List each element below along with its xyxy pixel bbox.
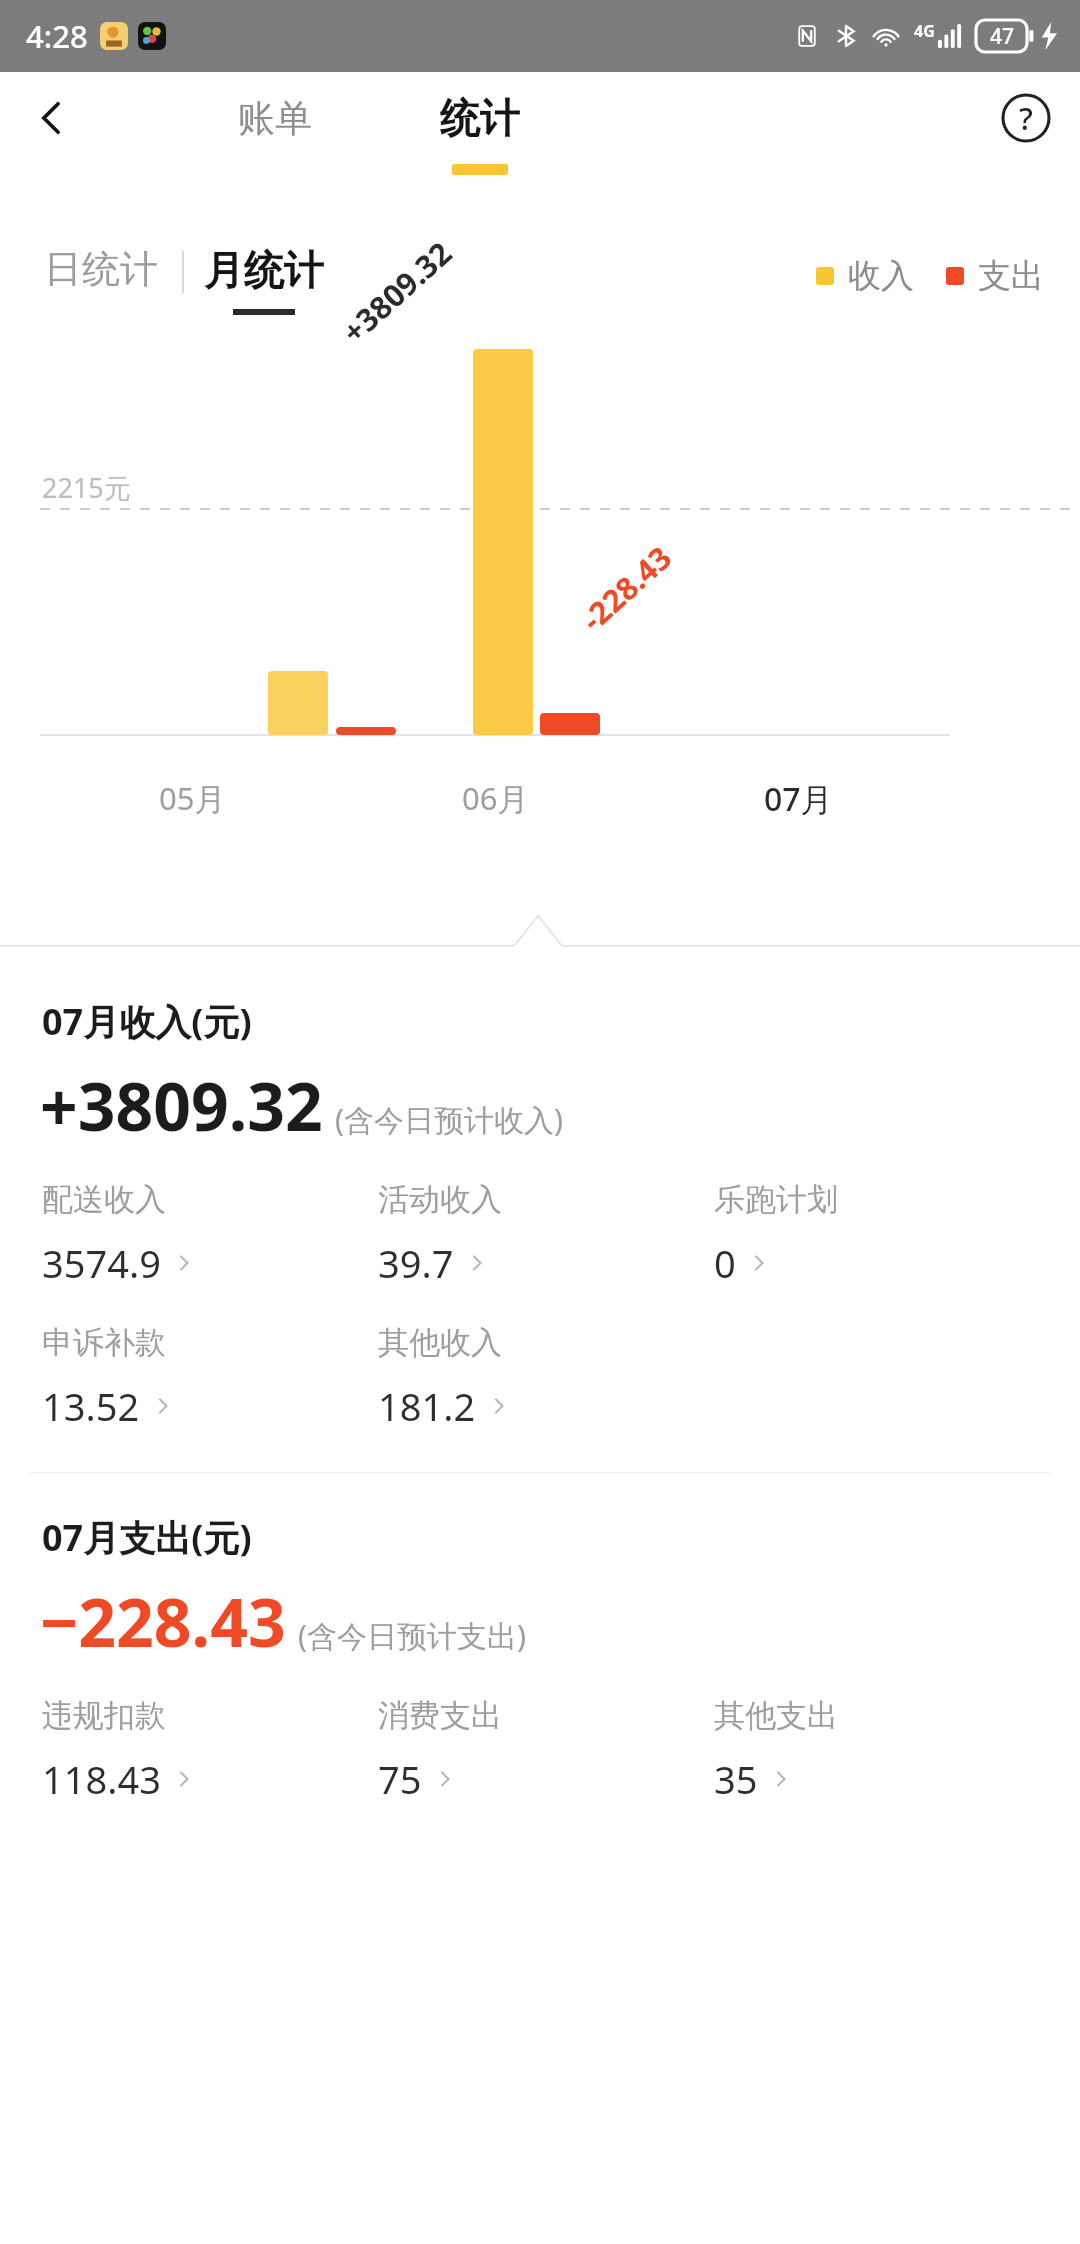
staticText: 13.52	[42, 1380, 140, 1432]
button[interactable]: 帮助	[988, 80, 1064, 156]
staticText: -228.43	[572, 536, 680, 640]
staticText: 支出	[978, 255, 1044, 297]
staticText: 47	[990, 22, 1015, 51]
staticText: 75	[378, 1753, 422, 1805]
staticText: +3809.32	[40, 1060, 323, 1150]
button[interactable]: 活动收入	[378, 1180, 502, 1289]
staticText: −228.43	[40, 1576, 286, 1666]
staticText: 07月	[764, 777, 833, 821]
staticText: 3574.9	[42, 1237, 161, 1289]
staticText: 月统计	[204, 245, 324, 295]
button[interactable]: 配送收入	[42, 1180, 195, 1289]
staticText: (含今日预计收入)	[335, 1099, 563, 1140]
staticText: 其他收入	[378, 1323, 502, 1362]
staticText: 07月收入(元)	[42, 997, 252, 1046]
staticText: 账单	[238, 95, 312, 142]
staticText: 申诉补款	[42, 1323, 166, 1362]
staticText: 违规扣款	[42, 1696, 166, 1735]
staticText: 活动收入	[378, 1180, 502, 1219]
button[interactable]: 日统计	[40, 245, 162, 293]
staticText: 收入	[848, 255, 914, 297]
staticText: 乐跑计划	[714, 1180, 838, 1219]
staticText: 05月	[159, 777, 226, 819]
staticText: ?	[1019, 97, 1033, 139]
staticText: 4:28	[26, 15, 88, 57]
button[interactable]: 消费支出	[378, 1696, 502, 1805]
staticText: 消费支出	[378, 1696, 502, 1735]
staticText: 181.2	[378, 1380, 476, 1432]
button[interactable]: 乐跑计划	[714, 1180, 838, 1289]
staticText: (含今日预计支出)	[298, 1615, 526, 1656]
staticText: 0	[714, 1237, 736, 1289]
staticText: 07月支出(元)	[42, 1513, 252, 1562]
staticText: 日统计	[44, 245, 158, 293]
button[interactable]: 月统计	[204, 245, 324, 315]
button[interactable]: 返回	[14, 80, 90, 156]
staticText: 118.43	[42, 1753, 161, 1805]
staticText: 35	[714, 1753, 758, 1805]
button[interactable]: 其他收入	[378, 1323, 510, 1432]
staticText: 39.7	[378, 1237, 454, 1289]
staticText: 4G	[914, 20, 935, 42]
staticText: 2215元	[42, 469, 131, 506]
staticText: 06月	[462, 777, 529, 819]
button[interactable]: 申诉补款	[42, 1323, 174, 1432]
staticText: 统计	[440, 93, 520, 143]
staticText: +3809.32	[333, 232, 460, 352]
button[interactable]: 违规扣款	[42, 1696, 195, 1805]
button[interactable]: 统计	[410, 80, 550, 175]
staticText: 配送收入	[42, 1180, 166, 1219]
button[interactable]: 其他支出	[714, 1696, 838, 1805]
button[interactable]: 账单	[205, 80, 345, 156]
staticText: 其他支出	[714, 1696, 838, 1735]
